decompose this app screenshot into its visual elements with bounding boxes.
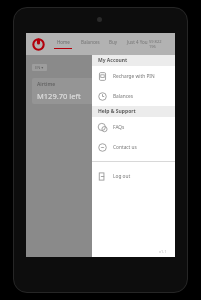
button[interactable]: Just 4 You	[126, 39, 149, 49]
button[interactable]: Log out	[92, 166, 175, 186]
staticText: Log out	[113, 173, 131, 180]
staticText: FAQs	[113, 124, 125, 131]
staticText: Help & Support	[98, 108, 136, 115]
staticText: EN ▾	[35, 65, 44, 70]
staticText: Recharge with PIN	[113, 73, 155, 80]
staticText: v1.1	[159, 249, 167, 254]
button[interactable]: Airtime	[32, 78, 120, 104]
staticText: My Account	[98, 57, 128, 64]
button[interactable]: Balances	[92, 86, 175, 106]
staticText: Just 4 You	[127, 39, 148, 45]
button[interactable]: FAQs	[92, 117, 175, 137]
button[interactable]: EN ▾	[32, 64, 47, 71]
staticText: Airtime	[37, 81, 56, 88]
button[interactable]: Contact us	[92, 137, 175, 157]
button[interactable]: Balances	[80, 39, 101, 49]
button[interactable]: Buy	[108, 39, 119, 49]
other: Logo	[32, 38, 45, 51]
staticText: Balances	[81, 39, 100, 45]
button[interactable]: Home	[53, 39, 73, 49]
staticText: Buy	[109, 39, 118, 45]
staticText: Last updated	[98, 62, 120, 67]
staticText: Balances	[113, 93, 134, 100]
button[interactable]: Recharge with PIN	[92, 66, 175, 86]
staticText: Home	[57, 39, 70, 45]
staticText: Contact us	[113, 144, 137, 151]
staticText: 59 822 196	[149, 39, 169, 49]
staticText: M129.70 left	[37, 91, 81, 101]
